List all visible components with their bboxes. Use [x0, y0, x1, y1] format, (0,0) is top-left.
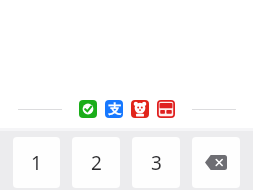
button[interactable]: Alipay [105, 100, 123, 118]
button[interactable]: 3 [132, 137, 180, 188]
button[interactable]: Red packet coupon [157, 100, 175, 118]
button[interactable]: WeChat Pay [79, 100, 97, 118]
button[interactable]: 1 [13, 137, 60, 188]
staticText: 支 [108, 101, 121, 117]
staticText: 1 [31, 150, 42, 176]
staticText: 2 [91, 150, 102, 176]
button[interactable]: Delete [192, 137, 240, 188]
staticText: 3 [151, 150, 162, 176]
button[interactable]: JD Pay [131, 100, 149, 118]
button[interactable]: 2 [72, 137, 120, 188]
